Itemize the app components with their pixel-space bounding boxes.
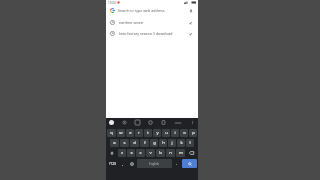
- button[interactable]: g: [150, 139, 158, 147]
- staticText: z: [121, 150, 123, 156]
- staticText: f: [144, 140, 146, 146]
- staticText: t: [147, 130, 149, 136]
- staticText: u: [165, 130, 168, 136]
- staticText: c: [139, 150, 142, 156]
- staticText: h: [162, 140, 165, 146]
- staticText: keto factory season 3 download: [119, 31, 173, 36]
- button[interactable]: Google Assistant: [109, 120, 114, 125]
- button[interactable]: Insert suggestion: [187, 30, 194, 37]
- button[interactable]: Search: [182, 159, 197, 168]
- staticText: g: [153, 140, 156, 146]
- staticText: Search or type web address: [118, 8, 165, 13]
- button[interactable]: ?123: [107, 159, 118, 168]
- button[interactable]: earthen seven: [106, 17, 198, 28]
- button[interactable]: x: [127, 149, 135, 157]
- other: Google: [110, 8, 115, 13]
- button[interactable]: p: [189, 129, 197, 137]
- button[interactable]: r: [135, 129, 143, 137]
- button[interactable]: Backspace: [186, 149, 197, 157]
- button[interactable]: Clipboard: [161, 120, 166, 125]
- button[interactable]: a: [110, 139, 119, 147]
- staticText: s: [123, 140, 126, 146]
- button[interactable]: Translate: [174, 120, 182, 126]
- button[interactable]: c: [136, 149, 145, 157]
- staticText: k: [180, 140, 183, 146]
- staticText: ?123: [109, 162, 116, 166]
- button[interactable]: More options: [190, 120, 195, 125]
- button[interactable]: k: [177, 139, 185, 147]
- staticText: English: [149, 162, 160, 166]
- button[interactable]: keto factory season 3 download: [106, 28, 198, 39]
- staticText: n: [169, 150, 172, 156]
- button[interactable]: u: [162, 129, 170, 137]
- button[interactable]: Stickers: [148, 120, 153, 125]
- staticText: m: [179, 150, 183, 156]
- button[interactable]: e: [126, 129, 134, 137]
- button[interactable]: GIF: [135, 120, 140, 125]
- staticText: i: [174, 130, 176, 136]
- staticText: e: [129, 130, 132, 136]
- staticText: p: [192, 130, 195, 136]
- button[interactable]: i: [171, 129, 179, 137]
- staticText: b: [159, 150, 162, 156]
- button[interactable]: y: [153, 129, 161, 137]
- staticText: j: [171, 140, 173, 146]
- button[interactable]: n: [166, 149, 175, 157]
- button[interactable]: English: [137, 159, 172, 168]
- staticText: earthen seven: [119, 20, 143, 25]
- staticText: v: [149, 150, 152, 156]
- button[interactable]: Google: [106, 5, 198, 16]
- staticText: ,: [122, 161, 124, 167]
- button[interactable]: t: [144, 129, 152, 137]
- button[interactable]: ,: [119, 159, 127, 168]
- button[interactable]: s: [120, 139, 129, 147]
- button[interactable]: z: [118, 149, 126, 157]
- button[interactable]: .: [173, 159, 181, 168]
- staticText: l: [189, 140, 191, 146]
- button[interactable]: b: [156, 149, 165, 157]
- button[interactable]: f: [140, 139, 149, 147]
- button[interactable]: Shift: [107, 149, 117, 157]
- button[interactable]: Themes: [122, 120, 127, 125]
- button[interactable]: o: [180, 129, 188, 137]
- button[interactable]: Insert suggestion: [187, 19, 194, 26]
- staticText: 10:04: [108, 1, 116, 5]
- staticText: x: [130, 150, 133, 156]
- button[interactable]: h: [159, 139, 167, 147]
- button[interactable]: v: [146, 149, 155, 157]
- button[interactable]: j: [168, 139, 176, 147]
- button[interactable]: Voice search: [187, 7, 194, 14]
- button[interactable]: l: [186, 139, 194, 147]
- button[interactable]: m: [176, 149, 185, 157]
- button[interactable]: d: [130, 139, 139, 147]
- staticText: y: [156, 130, 159, 136]
- staticText: r: [138, 130, 140, 136]
- button[interactable]: w: [117, 129, 125, 137]
- staticText: w: [119, 130, 123, 136]
- staticText: q: [110, 130, 113, 136]
- button[interactable]: Emoji: [128, 159, 136, 168]
- staticText: d: [133, 140, 136, 146]
- staticText: a: [113, 140, 116, 146]
- staticText: o: [183, 130, 186, 136]
- staticText: .: [176, 161, 178, 167]
- button[interactable]: q: [107, 129, 116, 137]
